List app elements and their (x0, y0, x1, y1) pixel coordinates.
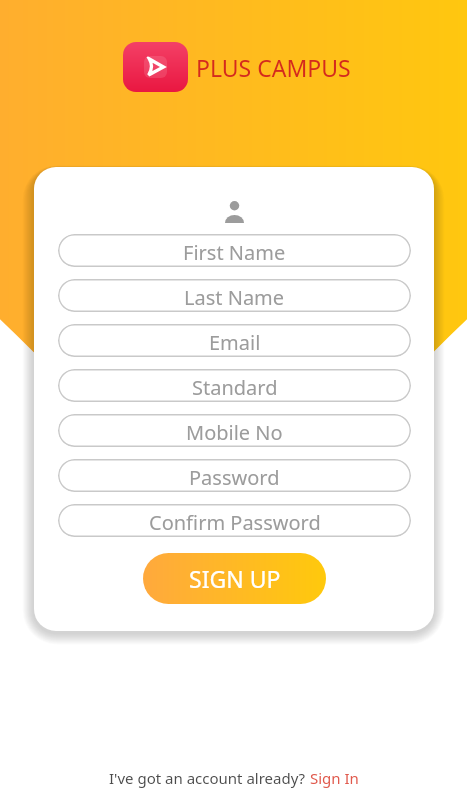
staticText: Email (209, 329, 261, 356)
other: Account (225, 201, 244, 223)
staticText: Password (189, 464, 280, 491)
staticText: SIGN UP (189, 563, 281, 594)
button[interactable]: Email (58, 324, 411, 357)
staticText: Standard (192, 374, 278, 401)
staticText: Sign In (310, 768, 359, 788)
staticText: I've got an account already? (109, 768, 310, 788)
button[interactable]: Last Name (58, 279, 411, 312)
button[interactable]: Mobile No (58, 414, 411, 447)
button[interactable]: Sign In (310, 768, 359, 788)
button[interactable]: First Name (58, 234, 411, 267)
staticText: Confirm Password (149, 509, 321, 536)
other: Plus Campus logo (123, 42, 188, 92)
button[interactable]: Password (58, 459, 411, 492)
staticText: PLUS CAMPUS (196, 52, 351, 83)
button[interactable]: Confirm Password (58, 504, 411, 537)
staticText: Mobile No (186, 419, 283, 446)
button[interactable]: SIGN UP (143, 553, 326, 604)
staticText: Last Name (184, 284, 285, 311)
staticText: First Name (183, 239, 286, 266)
button[interactable]: Standard (58, 369, 411, 402)
